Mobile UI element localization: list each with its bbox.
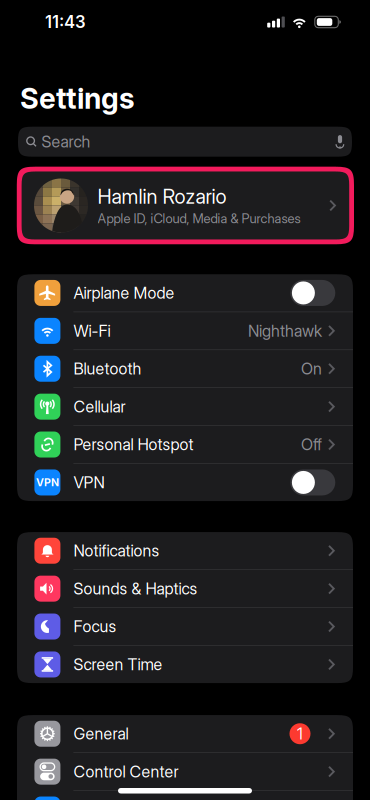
- button[interactable]: Hamlin Rozario: [17, 167, 354, 244]
- button[interactable]: Focus: [17, 608, 353, 645]
- button[interactable]: Bluetooth: [17, 350, 353, 387]
- button[interactable]: Search: [18, 127, 352, 157]
- button[interactable]: Notifications: [17, 532, 353, 569]
- button[interactable]: Screen Time: [17, 646, 353, 683]
- button[interactable]: VPN: [17, 464, 353, 501]
- staticText: Apple ID, iCloud, Media & Purchases: [98, 211, 301, 226]
- staticText: Focus: [73, 617, 116, 636]
- staticText: Airplane Mode: [73, 283, 174, 303]
- staticText: Settings: [20, 81, 135, 116]
- staticText: Bluetooth: [73, 359, 141, 378]
- staticText: Search: [42, 132, 91, 151]
- button[interactable]: Display & Brightness: [17, 791, 353, 800]
- button[interactable]: Control Center: [17, 753, 353, 790]
- button[interactable]: General: [17, 715, 353, 752]
- button[interactable]: Sounds & Haptics: [17, 570, 353, 607]
- staticText: Nighthawk: [248, 321, 322, 341]
- button[interactable]: Airplane Mode: [17, 274, 353, 312]
- staticText: Cellular: [73, 397, 125, 416]
- staticText: Hamlin Rozario: [98, 184, 227, 209]
- staticText: VPN: [73, 473, 104, 492]
- staticText: VPN: [36, 476, 59, 489]
- staticText: On: [301, 359, 322, 378]
- staticText: General: [73, 724, 128, 743]
- staticText: Sounds & Haptics: [73, 579, 197, 598]
- staticText: Wi-Fi: [73, 321, 110, 341]
- staticText: Off: [301, 435, 322, 454]
- button[interactable]: Personal Hotspot: [17, 426, 353, 463]
- staticText: Control Center: [73, 762, 178, 781]
- staticText: Personal Hotspot: [73, 435, 193, 454]
- button[interactable]: Wi-Fi: [17, 312, 353, 349]
- button[interactable]: Cellular: [17, 388, 353, 425]
- staticText: Notifications: [73, 541, 159, 560]
- staticText: Screen Time: [73, 655, 162, 674]
- staticText: 11:43: [45, 12, 86, 32]
- staticText: 1: [297, 724, 303, 743]
